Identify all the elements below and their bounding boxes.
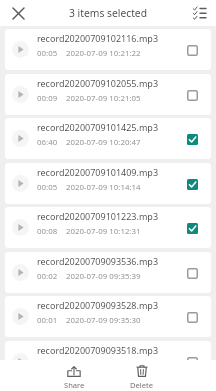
button[interactable]: record20200709101425.mp3 [5, 118, 211, 159]
button[interactable]: record20200709102055.mp3 [5, 74, 211, 115]
staticText: 2020-07-09 10:21:05 [66, 93, 141, 104]
staticText: 00:05 [37, 182, 58, 193]
staticText: 00:02 [37, 271, 58, 282]
button[interactable]: Not selected [181, 262, 203, 284]
button[interactable]: Not selected [181, 84, 203, 106]
staticText: 2020-07-09 09:35:20 [66, 360, 141, 371]
staticText: Delete [130, 380, 154, 390]
staticText: 2020-07-09 10:20:47 [66, 137, 141, 148]
staticText: 00:01 [37, 315, 58, 326]
staticText: 00:05 [37, 48, 58, 59]
staticText: record20200709101223.mp3 [37, 210, 159, 222]
button[interactable]: Selected [181, 128, 203, 150]
staticText: 00:09 [37, 93, 58, 104]
staticText: record20200709102055.mp3 [37, 77, 159, 89]
button[interactable]: Select all [187, 1, 211, 25]
button[interactable]: Selected [181, 217, 203, 239]
staticText: record20200709093528.mp3 [37, 299, 159, 311]
staticText: 2020-07-09 10:12:31 [66, 226, 141, 237]
staticText: record20200709102116.mp3 [37, 32, 159, 44]
button[interactable]: record20200709093518.mp3 [5, 341, 211, 382]
staticText: 2020-07-09 09:35:30 [66, 315, 141, 326]
button[interactable]: record20200709101223.mp3 [5, 207, 211, 248]
button[interactable]: record20200709093528.mp3 [5, 296, 211, 337]
staticText: 2020-07-09 10:14:14 [66, 182, 141, 193]
staticText: 00:08 [37, 226, 58, 237]
button[interactable]: Close selection [6, 1, 30, 25]
button[interactable]: record20200709093536.mp3 [5, 252, 211, 293]
button[interactable]: record20200709102116.mp3 [5, 29, 211, 70]
button[interactable]: record20200709101409.mp3 [5, 163, 211, 204]
button[interactable]: Selected [181, 173, 203, 195]
staticText: 2020-07-09 09:35:39 [66, 271, 141, 282]
button[interactable]: Delete [122, 360, 162, 391]
staticText: 2020-07-09 10:21:22 [66, 48, 141, 59]
button[interactable]: Not selected [181, 351, 203, 373]
staticText: record20200709093536.mp3 [37, 255, 159, 267]
staticText: record20200709101409.mp3 [37, 166, 159, 178]
button[interactable]: Not selected [181, 306, 203, 328]
staticText: record20200709101425.mp3 [37, 121, 159, 133]
staticText: 3 items selected [69, 6, 147, 20]
staticText: Share [64, 380, 85, 390]
staticText: 06:40 [37, 137, 58, 148]
button[interactable]: Share [54, 360, 94, 391]
staticText: record20200709093518.mp3 [37, 344, 159, 356]
button[interactable]: Not selected [181, 39, 203, 61]
